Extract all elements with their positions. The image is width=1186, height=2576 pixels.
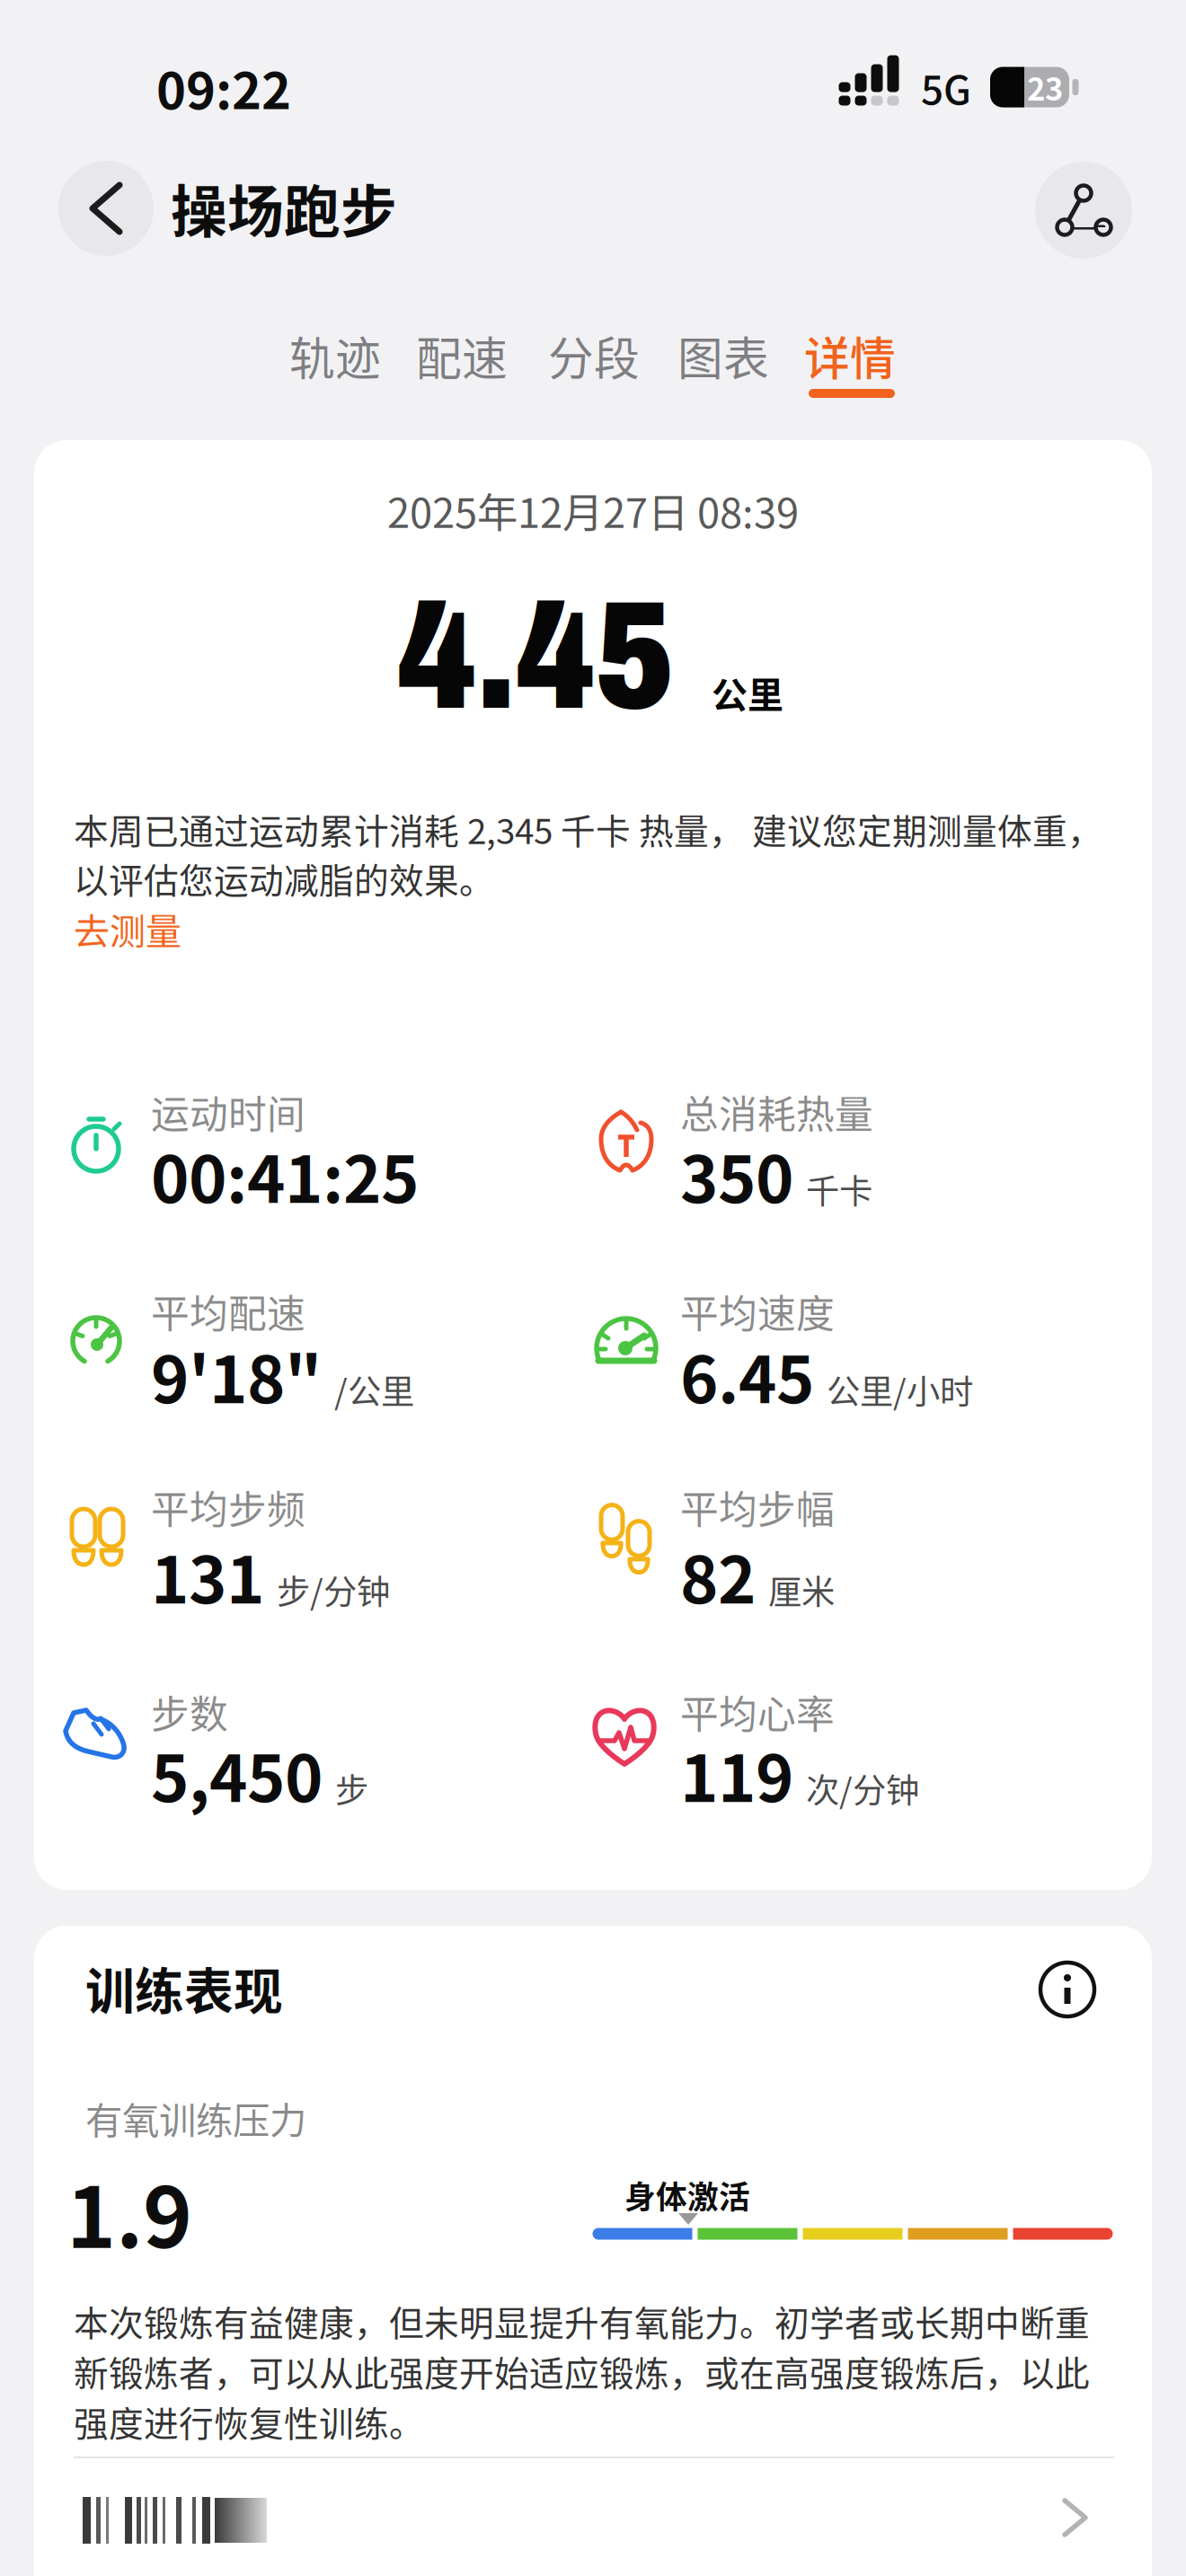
staticText: 有氧训练压力 [85,2091,306,2145]
staticText: /公里 [334,1365,414,1414]
staticText: 9'18" [151,1328,322,1422]
staticText: 身体激活 [624,2173,750,2218]
staticText: 分段 [548,323,640,389]
staticText: 去测量 [74,903,181,955]
staticText: 千卡 [806,1165,872,1213]
staticText: 强度进行恢复性训练。 [74,2396,424,2447]
button[interactable] [1038,1960,1097,2019]
staticText: 新锻炼者，可以从此强度开始适应锻炼，或在高强度锻炼后，以此 [74,2346,1090,2396]
staticText: 公里 [712,666,783,718]
staticText: 82 [680,1528,756,1622]
button[interactable]: 详情 [804,323,896,389]
button[interactable] [1035,162,1132,259]
staticText: 图表 [677,323,769,389]
button[interactable]: 分段 [548,323,640,389]
staticText: 本次锻炼有益健康，但未明显提升有氧能力。初学者或长期中断重 [74,2296,1090,2346]
button[interactable] [58,161,154,256]
staticText: 以评估您运动减脂的效果。 [74,853,494,904]
staticText: 1.9 [66,2151,192,2272]
staticText: 详情 [804,323,896,389]
staticText: 131 [151,1528,264,1622]
staticText: 5,450 [151,1727,323,1821]
staticText: 本周已通过运动累计消耗 2,345 千卡 热量， 建议您定期测量体重， [74,804,1102,854]
staticText: 平均心率 [680,1684,835,1740]
button[interactable]: 图表 [677,323,769,389]
staticText: 平均步幅 [680,1479,835,1535]
staticText: 训练表现 [85,1952,283,2023]
staticText: 步数 [151,1684,228,1740]
staticText: 步/分钟 [277,1565,390,1614]
staticText: 4.45 [397,573,674,740]
staticText: 平均步频 [151,1479,305,1535]
staticText: 总消耗热量 [680,1084,873,1140]
staticText: 6.45 [680,1328,814,1422]
staticText: 00:41:25 [151,1128,419,1222]
button[interactable]: 轨迹 [289,323,381,389]
staticText: 次/分钟 [806,1764,919,1813]
staticText: 公里/小时 [827,1365,973,1414]
staticText: 轨迹 [289,323,381,389]
button[interactable] [70,2488,1116,2553]
staticText: 运动时间 [151,1084,305,1140]
staticText: 09:22 [156,51,291,124]
button[interactable]: 去测量 [74,905,253,952]
staticText: 平均速度 [680,1284,835,1339]
staticText: 厘米 [768,1565,835,1614]
staticText: 2025年12月27日 08:39 [387,481,799,540]
staticText: 119 [680,1727,793,1821]
button[interactable]: 配速 [416,323,508,389]
staticText: 350 [680,1128,793,1222]
staticText: 23 [1027,65,1063,110]
staticText: 配速 [416,323,508,389]
staticText: 操场跑步 [171,167,397,248]
staticText: 步 [335,1764,368,1813]
staticText: 平均配速 [151,1284,305,1339]
staticText: 5G [921,58,971,116]
